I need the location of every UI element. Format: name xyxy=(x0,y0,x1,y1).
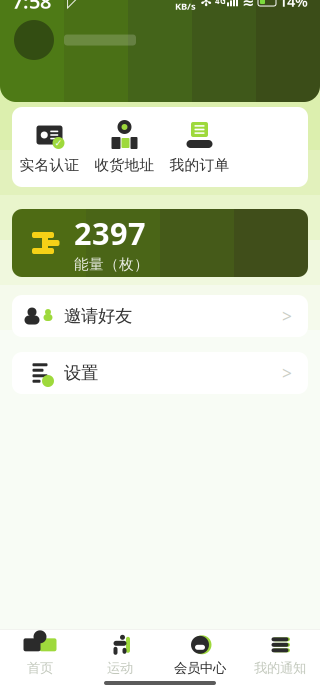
staticText: 7:58 xyxy=(12,0,51,14)
button[interactable]: 邀请好友 xyxy=(12,295,308,337)
staticText: 运动 xyxy=(107,660,133,676)
staticText: 14% xyxy=(279,0,308,11)
staticText: 我的通知 xyxy=(254,660,306,676)
staticText: KB/s xyxy=(175,0,196,12)
staticText: 邀请好友 xyxy=(64,305,132,327)
staticText: 设置 xyxy=(64,362,98,384)
button[interactable]: 会员中心 xyxy=(160,630,240,680)
staticText: 收货地址 xyxy=(94,156,154,174)
staticText: 2397 xyxy=(74,213,146,253)
staticText: ✻ xyxy=(200,0,212,9)
button[interactable]: ✓ xyxy=(12,118,87,176)
staticText: > xyxy=(282,361,292,384)
button[interactable]: 首页 xyxy=(0,630,80,680)
button[interactable]: 2397 xyxy=(12,209,308,277)
staticText: > xyxy=(282,304,292,327)
staticText: ≋ xyxy=(242,0,254,9)
staticText: 能量（枚） xyxy=(74,255,149,273)
staticText: 实名认证 xyxy=(19,156,79,174)
staticText: 2.62 xyxy=(176,0,194,2)
button[interactable]: 我的通知 xyxy=(240,630,320,680)
staticText: 首页 xyxy=(27,660,53,676)
staticText: ◸ xyxy=(67,0,80,11)
button[interactable]: 我的订单 xyxy=(162,118,237,176)
button[interactable]: 运动 xyxy=(80,630,160,680)
button[interactable]: 收货地址 xyxy=(87,118,162,176)
staticText: 会员中心 xyxy=(174,660,226,676)
staticText: 4G xyxy=(215,0,226,6)
staticText: ✓ xyxy=(54,138,62,148)
staticText: 我的订单 xyxy=(169,156,229,174)
button[interactable]: 设置 xyxy=(12,352,308,394)
